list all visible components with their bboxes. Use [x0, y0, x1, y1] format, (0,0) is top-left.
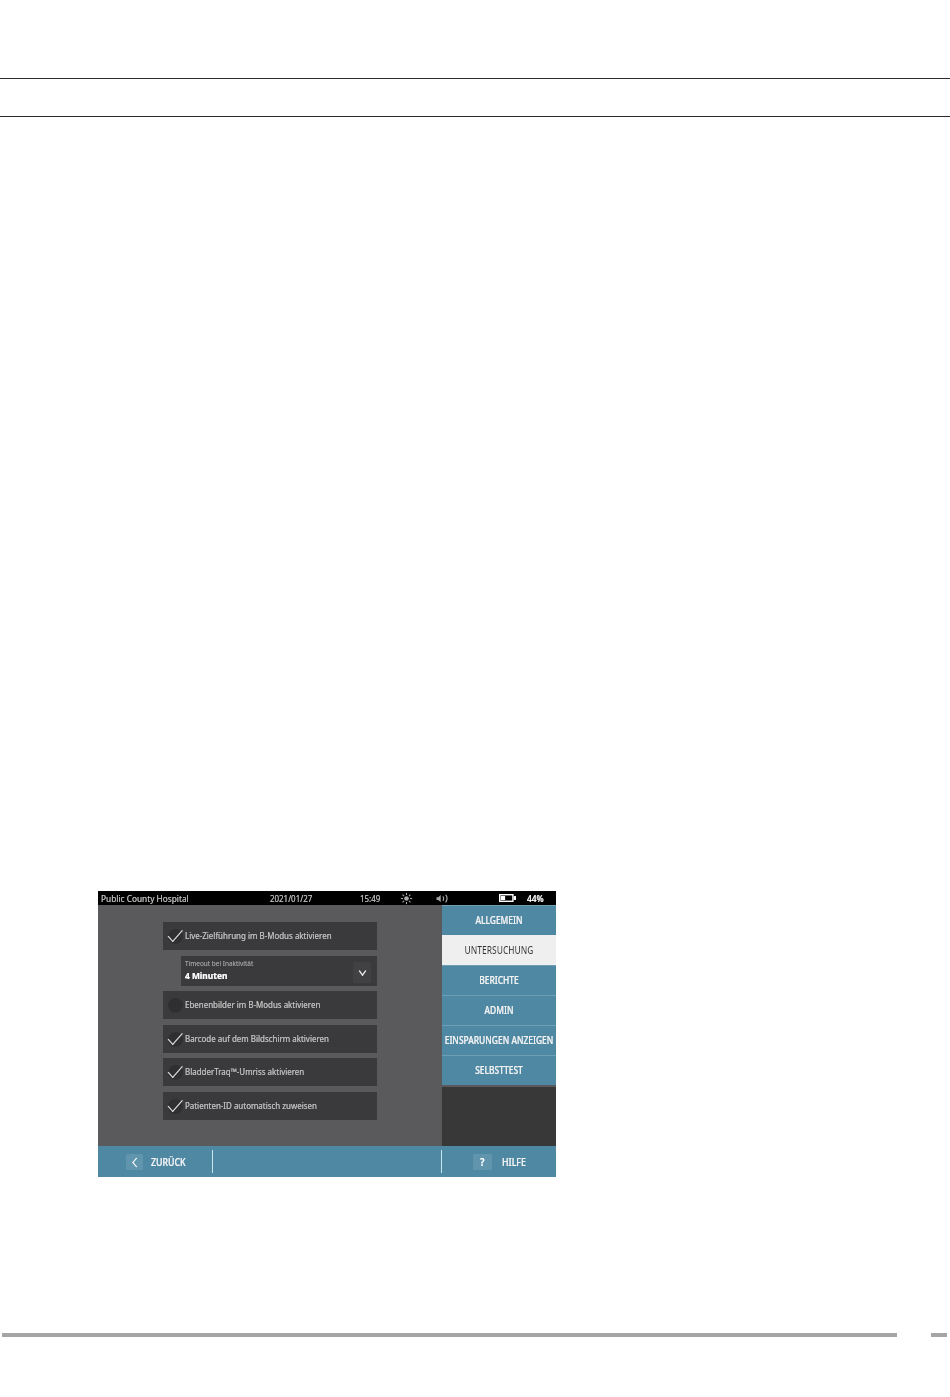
staticText: Public County Hospital: [101, 892, 189, 905]
button[interactable]: ?: [473, 1152, 530, 1172]
staticText: HILFE: [502, 1155, 526, 1169]
button[interactable]: ZURÜCK: [126, 1152, 192, 1172]
button[interactable]: ADMIN: [442, 995, 556, 1025]
button[interactable]: Lautstärke: [436, 893, 449, 904]
staticText: SELBSTTEST: [439, 1064, 559, 1077]
button[interactable]: Live-Zielführung im B-Modus aktivieren: [163, 922, 377, 950]
staticText: UNTERSUCHUNG: [439, 944, 559, 957]
staticText: EINSPARUNGEN ANZEIGEN: [439, 1034, 559, 1047]
staticText: Timeout bei Inaktivität: [185, 958, 254, 968]
staticText: ZURÜCK: [151, 1155, 186, 1169]
button[interactable]: Patienten-ID automatisch zuweisen: [163, 1092, 377, 1120]
staticText: ALLGEMEIN: [439, 914, 559, 927]
button[interactable]: ALLGEMEIN: [442, 905, 556, 935]
button[interactable]: Barcode auf dem Bildschirm aktivieren: [163, 1025, 377, 1053]
staticText: 4 Minuten: [185, 969, 228, 982]
staticText: 2021/01/27: [270, 892, 313, 904]
button[interactable]: Helligkeit: [400, 892, 413, 905]
staticText: Ebenenbilder im B-Modus aktivieren: [185, 998, 321, 1010]
staticText: ?: [480, 1155, 485, 1169]
staticText: BERICHTE: [439, 974, 559, 987]
button[interactable]: BladderTraq™-Umriss aktivieren: [163, 1058, 377, 1086]
staticText: 44%: [527, 892, 544, 905]
staticText: BladderTraq™-Umriss aktivieren: [185, 1065, 305, 1077]
staticText: 15:49: [360, 892, 381, 904]
button[interactable]: UNTERSUCHUNG: [442, 935, 556, 965]
button[interactable]: Auswahl öffnen: [353, 962, 371, 983]
button[interactable]: BERICHTE: [442, 965, 556, 995]
button[interactable]: Timeout bei Inaktivität: [181, 956, 377, 986]
staticText: Patienten-ID automatisch zuweisen: [185, 1099, 318, 1111]
button[interactable]: SELBSTTEST: [442, 1055, 556, 1085]
staticText: Live-Zielführung im B-Modus aktivieren: [185, 929, 332, 941]
button[interactable]: EINSPARUNGEN ANZEIGEN: [442, 1025, 556, 1055]
button[interactable]: Ebenenbilder im B-Modus aktivieren: [163, 991, 377, 1019]
staticText: Barcode auf dem Bildschirm aktivieren: [185, 1032, 329, 1044]
staticText: ADMIN: [439, 1004, 559, 1017]
